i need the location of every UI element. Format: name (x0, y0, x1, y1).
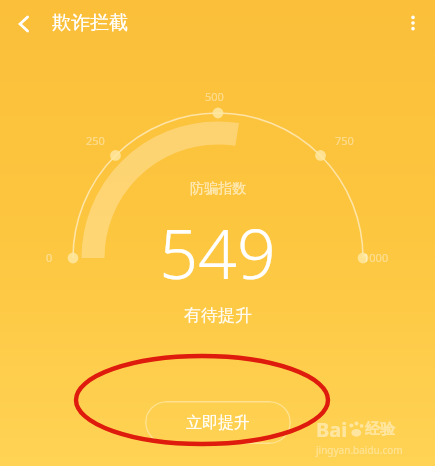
staticText: 经验 (365, 420, 395, 439)
staticText: 1000 (363, 250, 389, 265)
staticText: 750 (335, 133, 354, 148)
button[interactable]: More options (393, 3, 433, 43)
staticText: Bai (316, 416, 348, 443)
staticText: 500 (205, 89, 224, 104)
staticText: 有待提升 (184, 305, 252, 326)
staticText: 0 (46, 250, 53, 265)
staticText: 立即提升 (186, 413, 250, 433)
staticText: 250 (86, 133, 105, 148)
staticText: jingyan.baidu.com (316, 443, 403, 457)
button[interactable]: 立即提升 (145, 401, 291, 444)
staticText: 防骗指数 (190, 180, 246, 198)
button[interactable]: Back (5, 5, 43, 43)
staticText: 欺诈拦截 (52, 11, 128, 35)
staticText: 549 (159, 206, 276, 299)
